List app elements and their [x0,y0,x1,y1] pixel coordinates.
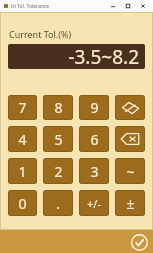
button[interactable]: 0 [8,190,37,216]
staticText: 8 [54,98,63,117]
button[interactable]: 4 [8,126,37,152]
button[interactable]: ± [115,190,145,216]
button[interactable]: 5 [43,126,73,152]
button[interactable]: Clear [115,95,145,120]
button[interactable]: ~ [115,158,145,184]
staticText: Current Tol.(%) [9,28,72,40]
staticText: 0 [18,194,27,213]
button[interactable]: -3.5~8.2 [8,44,145,69]
button[interactable]: . [43,190,73,216]
staticText: 4 [18,130,27,149]
staticText: 3 [90,162,99,181]
button[interactable]: 6 [79,126,109,152]
button[interactable]: 3 [79,158,109,184]
staticText: 9 [90,98,99,117]
button[interactable]: 1 [8,158,37,184]
staticText: ~ [126,162,135,181]
button[interactable]: +/- [79,190,109,216]
staticText: -3.5~8.2 [68,44,139,69]
staticText: +/- [87,196,101,211]
staticText: 6 [90,130,99,149]
staticText: 7 [18,98,27,117]
staticText: In Tol. Tolerance [11,3,50,10]
button[interactable]: Backspace [115,126,145,152]
staticText: 2 [54,162,63,181]
button[interactable]: 7 [8,95,37,120]
button[interactable]: Close [135,0,150,12]
staticText: 5 [54,130,63,149]
staticText: 1 [18,162,27,181]
button[interactable]: 9 [79,95,109,120]
staticText: ± [126,194,135,213]
button[interactable]: Maximize [120,0,135,12]
button[interactable]: Minimize [105,0,120,12]
button[interactable]: Confirm [129,232,149,252]
staticText: . [56,194,60,213]
button[interactable]: 2 [43,158,73,184]
button[interactable]: 8 [43,95,73,120]
